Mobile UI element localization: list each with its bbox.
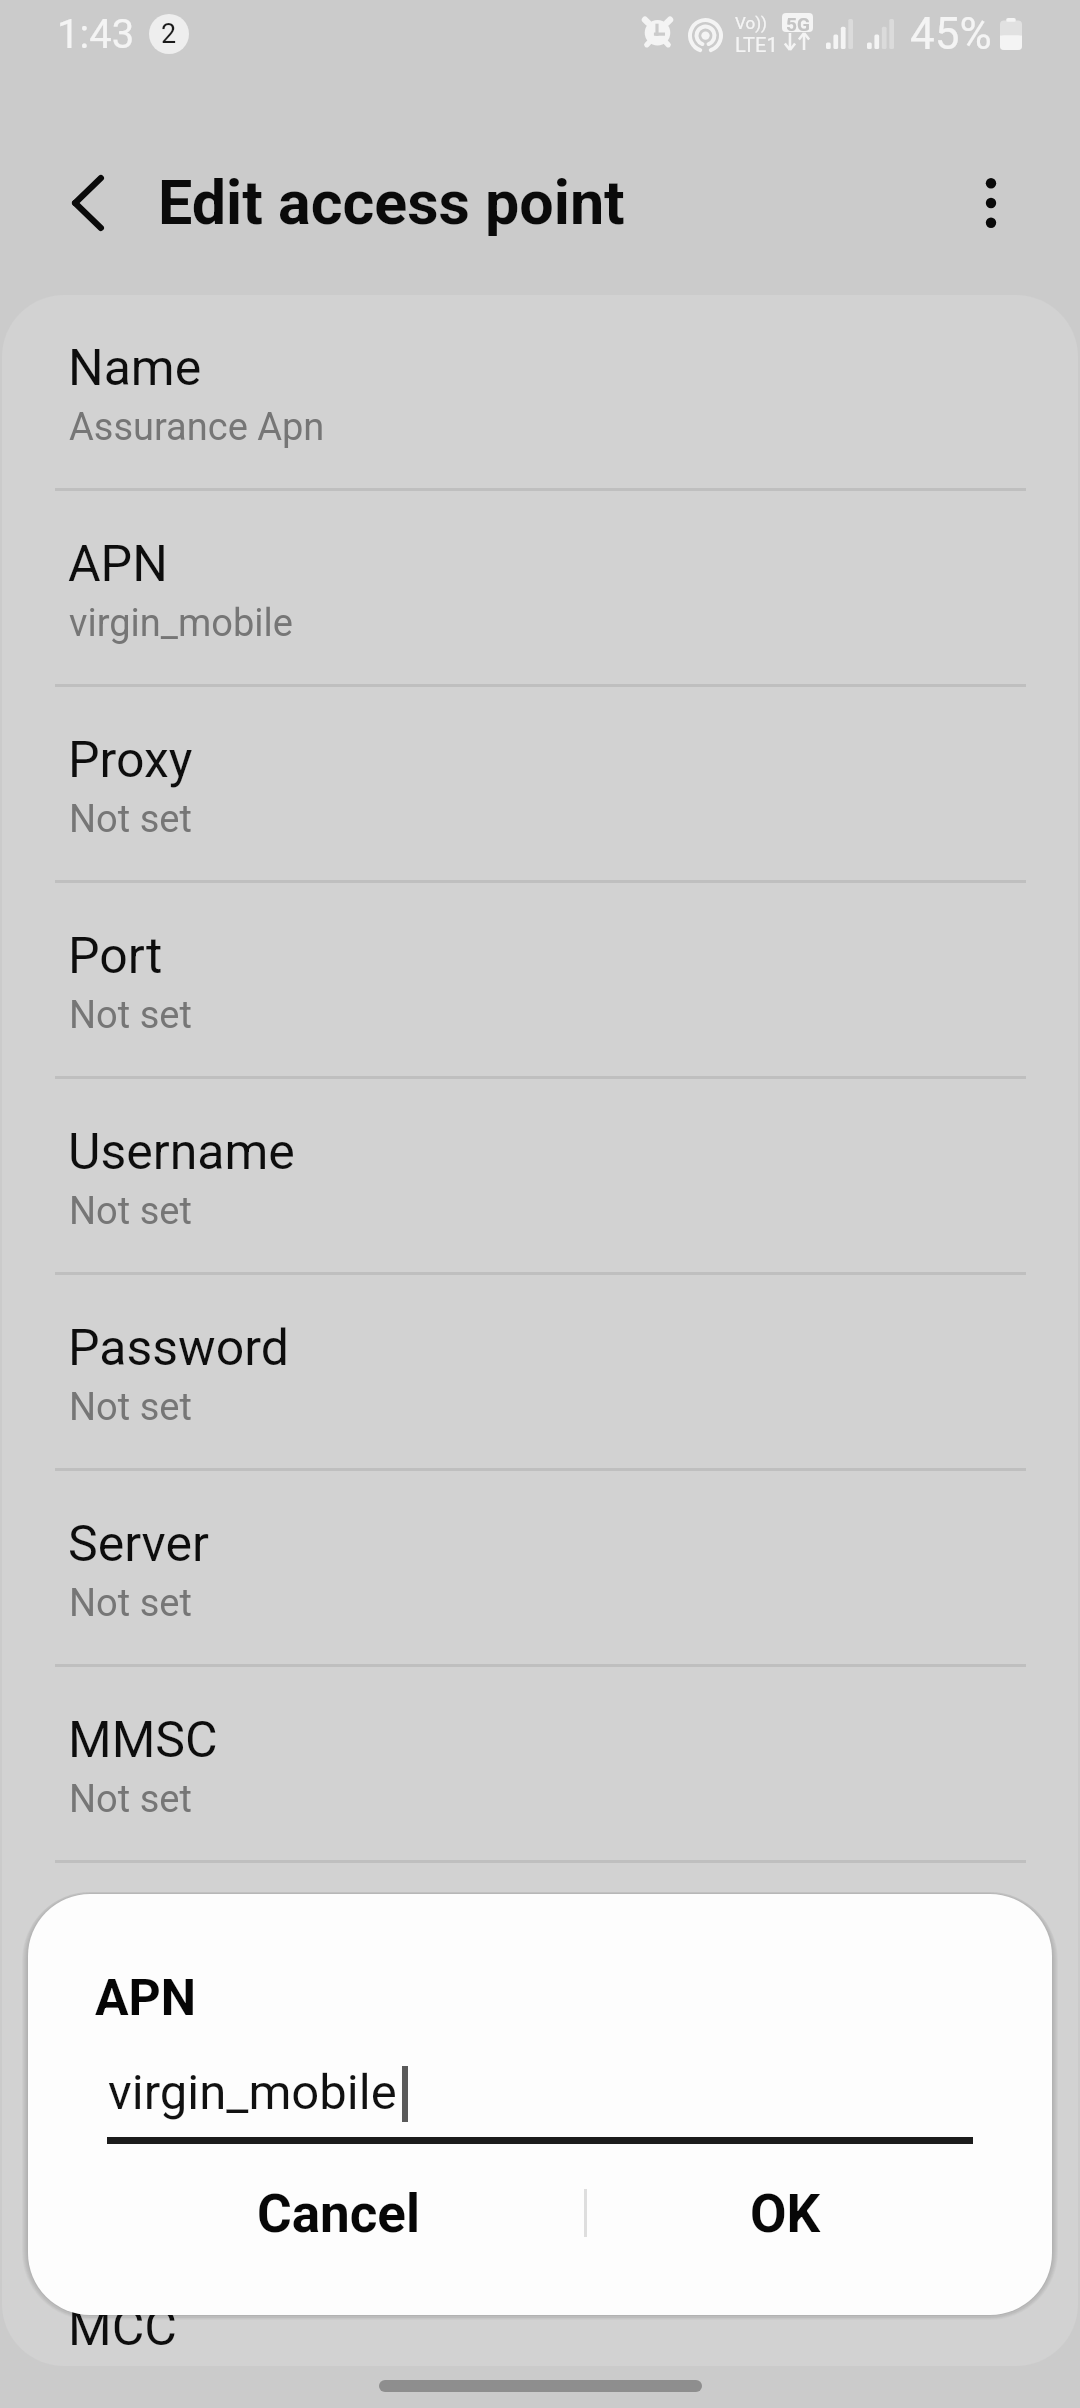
button[interactable]: MMSC xyxy=(2,1667,1078,1863)
staticText: MMS port xyxy=(68,2103,289,2162)
staticText: Not set xyxy=(69,993,192,1038)
staticText: APN xyxy=(68,535,168,594)
staticText: Server xyxy=(68,1515,209,1574)
staticText: 5G xyxy=(786,13,810,32)
staticText: APN xyxy=(95,1969,197,2028)
staticText: Not set xyxy=(69,1581,192,1626)
button[interactable]: Cancel xyxy=(89,2156,589,2272)
staticText: Port xyxy=(68,927,163,986)
staticText: Not set xyxy=(69,1385,192,1430)
staticText: 45% xyxy=(910,8,992,60)
button[interactable]: Username xyxy=(2,1079,1078,1275)
staticText: Not set xyxy=(69,1777,192,1822)
button[interactable]: APN xyxy=(2,491,1078,687)
button[interactable]: Proxy xyxy=(2,687,1078,883)
staticText: MCC xyxy=(68,2299,177,2358)
staticText: Vo)) xyxy=(735,13,767,33)
staticText: OK xyxy=(750,2183,821,2245)
button[interactable]: MMS port xyxy=(2,2059,1078,2255)
button[interactable]: Navigate up xyxy=(40,155,136,251)
staticText: Assurance Apn xyxy=(69,405,325,450)
staticText: Edit access point xyxy=(158,167,625,238)
staticText: Password xyxy=(68,1319,289,1378)
staticText: Not set xyxy=(69,1973,192,2018)
staticText: virgin_mobile xyxy=(69,601,293,646)
button[interactable]: Password xyxy=(2,1275,1078,1471)
staticText: Username xyxy=(68,1123,295,1182)
button[interactable]: Name xyxy=(2,295,1078,491)
staticText: 2 xyxy=(161,18,177,50)
button[interactable]: MMS proxy xyxy=(2,1863,1078,2059)
button[interactable]: OK xyxy=(589,2156,981,2272)
staticText: virgin_mobile xyxy=(108,2064,397,2121)
button[interactable]: More options xyxy=(943,155,1039,251)
button[interactable]: Server xyxy=(2,1471,1078,1667)
staticText: Cancel xyxy=(257,2183,421,2245)
staticText: Not set xyxy=(69,1189,192,1234)
button[interactable]: Port xyxy=(2,883,1078,1079)
staticText: Not set xyxy=(69,797,192,842)
staticText: Proxy xyxy=(68,731,193,790)
staticText: LTE1 xyxy=(735,33,778,56)
staticText: MMSC xyxy=(68,1711,218,1770)
button[interactable]: MCC xyxy=(2,2255,1078,2366)
staticText: Name xyxy=(68,339,202,398)
staticText: 1:43 xyxy=(57,11,135,58)
